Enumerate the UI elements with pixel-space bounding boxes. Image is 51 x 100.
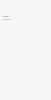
staticText: Jonathan [2,17,10,21]
staticText: Name [2,14,8,18]
